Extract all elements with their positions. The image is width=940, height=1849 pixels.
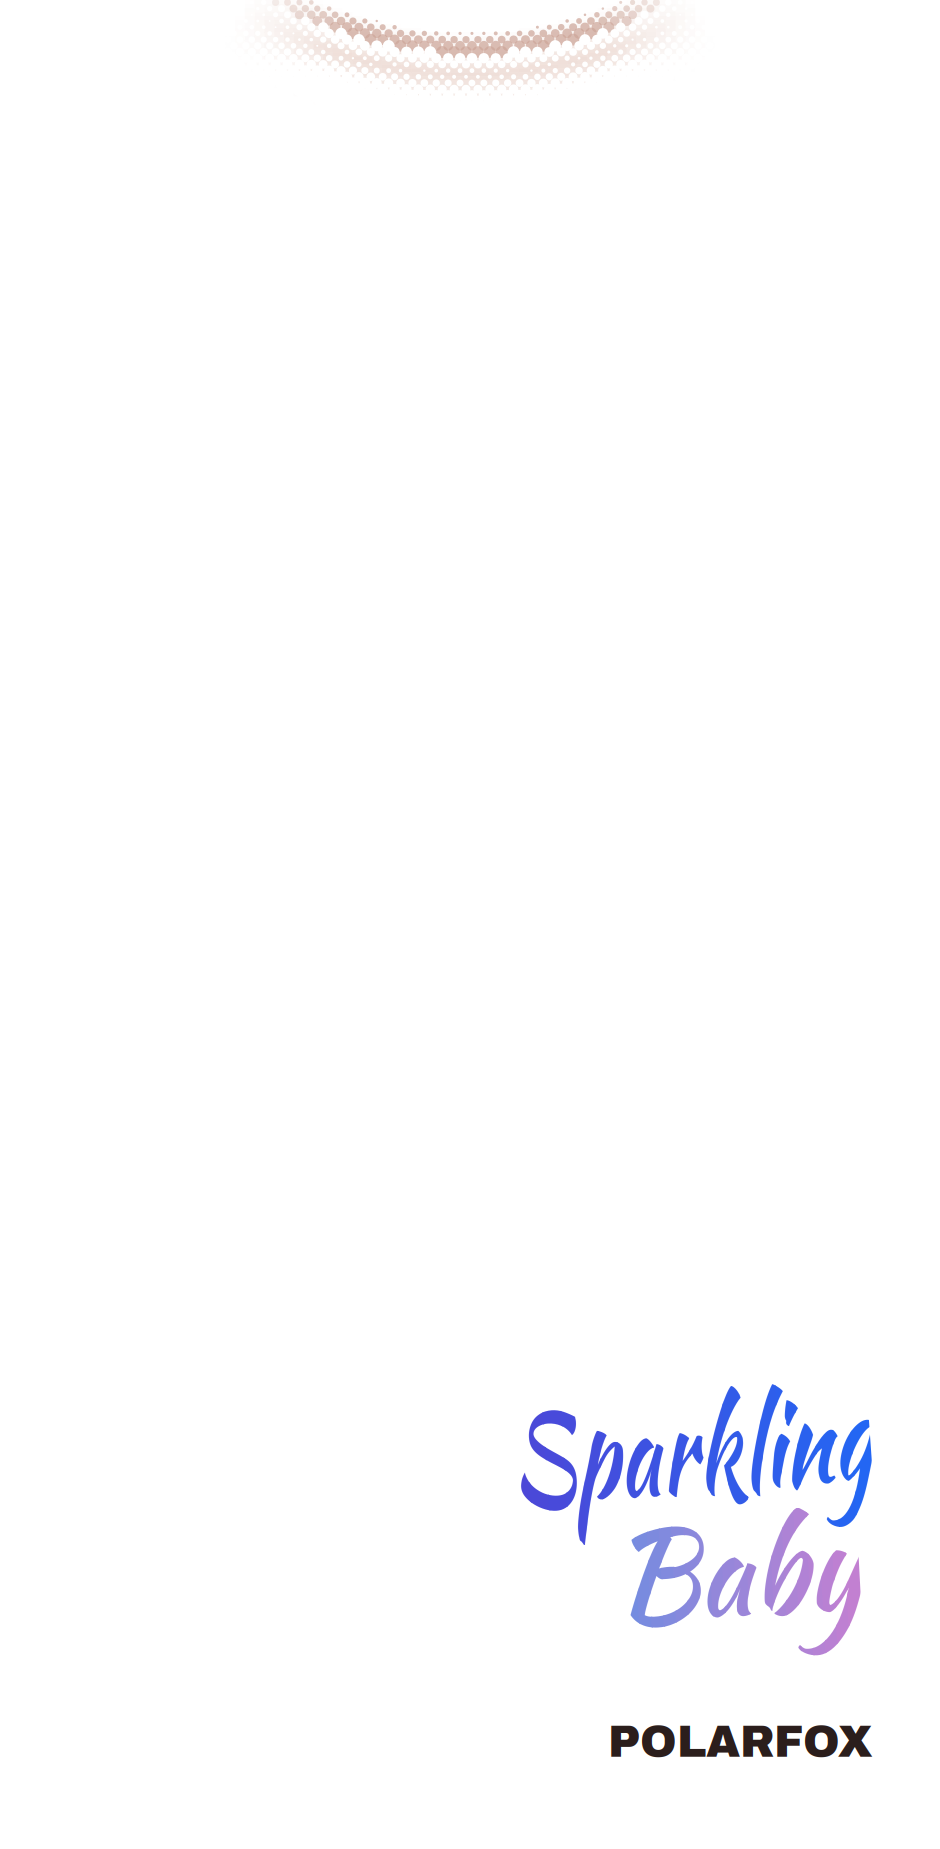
staticText: Baby bbox=[608, 1488, 871, 1666]
staticText: Baby bbox=[608, 1488, 871, 1666]
staticText: Baby bbox=[608, 1488, 871, 1666]
staticText: Baby bbox=[608, 1488, 871, 1666]
staticText: Sparkling bbox=[504, 1372, 940, 1550]
staticText: Sparkling bbox=[504, 1372, 940, 1550]
staticText: Sparkling bbox=[504, 1372, 940, 1550]
staticText: Baby bbox=[608, 1488, 871, 1666]
staticText: Sparkling bbox=[504, 1372, 940, 1550]
staticText: Baby bbox=[608, 1488, 871, 1666]
staticText: Baby bbox=[608, 1488, 871, 1666]
staticText: Sparkling bbox=[504, 1372, 940, 1550]
staticText: Baby bbox=[608, 1488, 871, 1666]
staticText: Sparkling bbox=[504, 1372, 940, 1550]
staticText: Sparkling bbox=[504, 1372, 940, 1550]
staticText: Sparkling bbox=[504, 1372, 940, 1550]
staticText: Sparkling bbox=[504, 1372, 940, 1550]
staticText: Baby bbox=[608, 1488, 871, 1666]
staticText: Sparkling bbox=[504, 1372, 940, 1550]
staticText: Baby bbox=[608, 1488, 871, 1666]
staticText: Baby bbox=[608, 1488, 871, 1666]
staticText: POLARFOX bbox=[608, 1718, 872, 1766]
staticText: Sparkling bbox=[504, 1372, 940, 1550]
staticText: Sparkling bbox=[504, 1372, 940, 1550]
staticText: Sparkling bbox=[504, 1372, 940, 1550]
staticText: Baby bbox=[608, 1488, 871, 1666]
staticText: Baby bbox=[608, 1488, 871, 1666]
staticText: Baby bbox=[608, 1488, 871, 1666]
staticText: Sparkling bbox=[504, 1372, 940, 1550]
staticText: Sparkling bbox=[504, 1372, 940, 1550]
staticText: Sparkling bbox=[504, 1372, 940, 1550]
staticText: Baby bbox=[608, 1488, 871, 1666]
staticText: Baby bbox=[608, 1488, 871, 1666]
staticText: Sparkling bbox=[504, 1372, 940, 1550]
staticText: Baby bbox=[608, 1488, 871, 1666]
staticText: Baby bbox=[608, 1488, 871, 1666]
staticText: Sparkling bbox=[504, 1372, 940, 1550]
staticText: Baby bbox=[608, 1488, 871, 1666]
staticText: Sparkling bbox=[504, 1372, 940, 1550]
staticText: Baby bbox=[608, 1488, 871, 1666]
staticText: Sparkling bbox=[504, 1372, 940, 1550]
